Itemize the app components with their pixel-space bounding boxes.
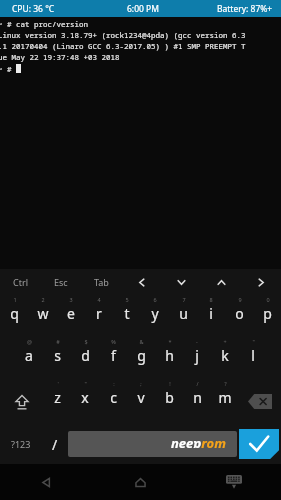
staticText: % <box>111 338 116 345</box>
button[interactable]: $ <box>71 337 99 379</box>
button[interactable]: Hide keyboard <box>187 464 281 500</box>
button[interactable]: Left <box>121 269 161 295</box>
button[interactable]: ' <box>43 379 71 424</box>
staticText: i <box>209 304 213 323</box>
button[interactable]: Right <box>241 269 281 295</box>
button[interactable]: 3 <box>57 295 85 337</box>
staticText: p <box>263 304 272 323</box>
button[interactable]: Home <box>93 464 187 500</box>
staticText: o <box>235 304 244 323</box>
button[interactable]: 1 <box>0 295 29 337</box>
button[interactable]: : <box>99 379 127 424</box>
button[interactable]: " <box>71 379 99 424</box>
staticText: ?123 <box>11 438 31 450</box>
staticText: z <box>54 388 61 407</box>
staticText: r <box>96 304 102 323</box>
button[interactable]: / <box>183 379 211 424</box>
button[interactable]: Esc <box>41 269 81 295</box>
staticText: $ <box>84 338 88 345</box>
staticText: f <box>111 346 116 365</box>
button[interactable]: Space <box>68 431 237 457</box>
button[interactable]: 2 <box>29 295 57 337</box>
staticText: d <box>81 346 90 365</box>
staticText: l <box>251 346 255 365</box>
staticText: a <box>25 346 33 365</box>
button[interactable]: 8 <box>197 295 225 337</box>
staticText: ~ # cat proc/version <box>0 19 88 30</box>
staticText: h <box>165 346 174 365</box>
staticText: & <box>139 338 144 345</box>
staticText: b <box>165 388 174 407</box>
button[interactable]: Enter <box>239 429 279 459</box>
staticText: .1 20170404 (Linaro GCC 6.3-2017.05) ) #… <box>0 41 246 52</box>
staticText: v <box>137 388 145 407</box>
button[interactable]: @ <box>15 337 43 379</box>
button[interactable]: Backspace <box>239 379 281 424</box>
staticText: @ <box>27 338 32 345</box>
staticText: ~ # <box>0 64 16 74</box>
staticText: 9 <box>238 296 242 303</box>
staticText: x <box>81 388 89 407</box>
staticText: Tab <box>94 276 109 288</box>
staticText: n <box>193 388 202 407</box>
staticText: q <box>10 304 19 323</box>
button[interactable]: 5 <box>113 295 141 337</box>
staticText: # <box>56 338 60 345</box>
button[interactable]: & <box>127 337 155 379</box>
staticText: Linux version 3.18.79+ (rock1234@4pda) (… <box>0 30 246 41</box>
button[interactable]: ! <box>155 379 183 424</box>
staticText: 1 <box>13 296 17 303</box>
staticText: Esc <box>54 276 68 288</box>
button[interactable]: - <box>183 337 211 379</box>
staticText: / <box>52 435 58 454</box>
staticText: 5 <box>125 296 129 303</box>
button[interactable]: Down <box>161 269 201 295</box>
staticText: " <box>84 380 87 387</box>
button[interactable]: + <box>211 337 239 379</box>
button[interactable]: 4 <box>85 295 113 337</box>
button[interactable]: ; <box>127 379 155 424</box>
staticText: CPU: 36 °C <box>12 3 55 15</box>
button[interactable]: ?123 <box>0 424 41 464</box>
staticText: u <box>179 304 188 323</box>
staticText: 4 <box>97 296 101 303</box>
staticText: neeɒrom <box>171 434 226 452</box>
staticText: / <box>196 380 199 387</box>
button[interactable]: ? <box>211 379 239 424</box>
button[interactable]: 7 <box>169 295 197 337</box>
staticText: 3 <box>69 296 73 303</box>
staticText: " <box>252 338 255 345</box>
staticText: c <box>110 388 117 407</box>
staticText: 2 <box>41 296 45 303</box>
staticText: e <box>67 304 75 323</box>
button[interactable]: / <box>41 424 68 464</box>
button[interactable]: 0 <box>253 295 281 337</box>
staticText: t <box>124 304 130 323</box>
button[interactable]: % <box>99 337 127 379</box>
staticText: : <box>113 380 115 387</box>
staticText: ' <box>57 380 59 387</box>
button[interactable]: Back <box>0 464 93 500</box>
staticText: m <box>218 388 232 407</box>
staticText: ue May 22 19:37:48 +03 2018 <box>0 52 120 63</box>
button[interactable]: " <box>239 337 267 379</box>
button[interactable]: # <box>43 337 71 379</box>
button[interactable]: Shift <box>0 379 43 424</box>
staticText: w <box>37 304 49 323</box>
staticText: 8 <box>209 296 213 303</box>
staticText: k <box>221 346 229 365</box>
staticText: 0 <box>266 296 270 303</box>
button[interactable]: * <box>155 337 183 379</box>
button[interactable]: Up <box>201 269 241 295</box>
button[interactable]: Ctrl <box>0 269 41 295</box>
button[interactable]: 9 <box>225 295 253 337</box>
button[interactable]: Tab <box>81 269 121 295</box>
staticText: j <box>195 346 199 365</box>
button[interactable]: 6 <box>141 295 169 337</box>
staticText: y <box>151 304 159 323</box>
staticText: g <box>137 346 146 365</box>
staticText: Ctrl <box>13 276 28 288</box>
staticText: ! <box>169 380 171 387</box>
staticText: s <box>54 346 61 365</box>
staticText: - <box>196 338 198 345</box>
